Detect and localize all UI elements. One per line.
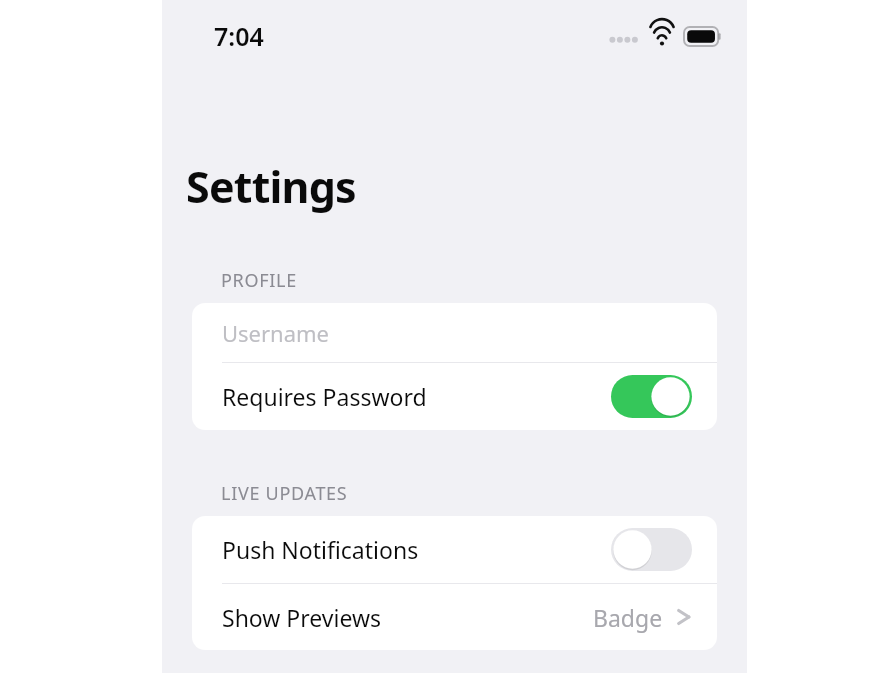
button[interactable]: Requires Password	[192, 363, 717, 430]
button[interactable]: Toggle off	[611, 528, 692, 571]
button[interactable]: Show Previews	[192, 584, 717, 650]
button[interactable]: Toggle on	[611, 375, 692, 418]
staticText: Username	[222, 318, 330, 348]
staticText: LIVE UPDATES	[221, 481, 348, 506]
staticText: 7:04	[214, 19, 264, 53]
staticText: PROFILE	[221, 268, 297, 293]
staticText: Push Notifications	[222, 534, 419, 565]
staticText: Settings	[186, 157, 356, 216]
staticText: Requires Password	[222, 381, 427, 412]
button[interactable]: Push Notifications	[192, 516, 717, 583]
button[interactable]: Username	[192, 303, 717, 362]
staticText: Badge	[593, 602, 663, 633]
staticText: Show Previews	[222, 602, 382, 633]
